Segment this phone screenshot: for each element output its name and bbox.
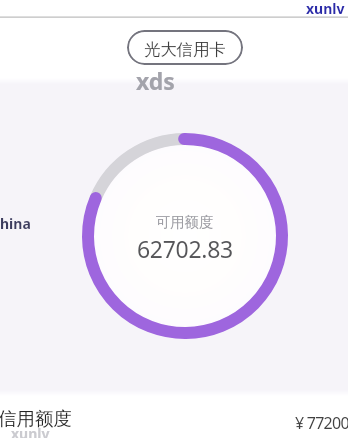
button[interactable]: 光大信用卡 (127, 30, 243, 65)
button[interactable]: 信用额度 (0, 395, 348, 437)
staticText: xunlv (11, 424, 50, 438)
staticText: xunlv (306, 0, 345, 18)
staticText: hina (0, 214, 31, 233)
button[interactable]: Available credit gauge (82, 133, 288, 339)
staticText: xds (136, 65, 175, 96)
staticText: 可用额度 (156, 213, 214, 231)
staticText: 信用额度 (0, 407, 72, 430)
staticText: 光大信用卡 (144, 39, 226, 60)
staticText: 62702.83 (137, 233, 233, 264)
staticText: ¥ 772000 (295, 412, 348, 434)
